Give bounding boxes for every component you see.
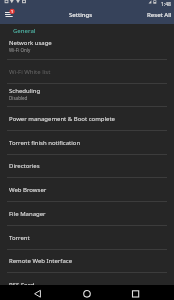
staticText: Wi-Fi Only bbox=[9, 47, 31, 53]
staticText: Reset All bbox=[147, 10, 172, 18]
button[interactable]: Remote Web Interface bbox=[0, 250, 174, 273]
staticText: Settings bbox=[69, 10, 93, 18]
button[interactable]: Wi-Fi White list bbox=[0, 60, 174, 84]
staticText: Web Browser bbox=[9, 186, 47, 194]
button[interactable]: Torrent bbox=[0, 226, 174, 250]
staticText: RSS Feed bbox=[9, 281, 35, 289]
button[interactable]: Home bbox=[77, 287, 97, 300]
staticText: Remote Web Interface bbox=[9, 257, 73, 265]
staticText: 1 bbox=[11, 9, 14, 14]
staticText: Directories bbox=[9, 162, 40, 170]
staticText: File Manager bbox=[9, 210, 46, 218]
button[interactable]: Open navigation menu bbox=[0, 8, 18, 24]
staticText: Power management & Boot complete bbox=[9, 115, 115, 123]
button[interactable]: Back bbox=[28, 287, 48, 300]
staticText: General bbox=[13, 27, 36, 35]
button[interactable]: RSS Feed bbox=[0, 273, 174, 297]
button[interactable]: Web Browser bbox=[0, 178, 174, 202]
staticText: 1:48 bbox=[161, 1, 171, 8]
button[interactable]: Reset All bbox=[147, 8, 174, 24]
button[interactable]: Recent apps bbox=[126, 287, 146, 300]
staticText: Scheduling bbox=[9, 87, 41, 95]
staticText: Wi-Fi White list bbox=[9, 68, 51, 76]
button[interactable]: Directories bbox=[0, 155, 174, 178]
button[interactable]: Power management & Boot complete bbox=[0, 107, 174, 131]
staticText: Disabled bbox=[9, 95, 28, 101]
button[interactable]: Scheduling bbox=[0, 84, 174, 107]
button[interactable]: File Manager bbox=[0, 202, 174, 226]
staticText: Network usage bbox=[9, 39, 52, 47]
button[interactable]: Network usage bbox=[0, 36, 174, 60]
staticText: Torrent finish notification bbox=[9, 139, 81, 147]
staticText: Torrent bbox=[9, 234, 30, 242]
button[interactable]: Torrent finish notification bbox=[0, 131, 174, 155]
